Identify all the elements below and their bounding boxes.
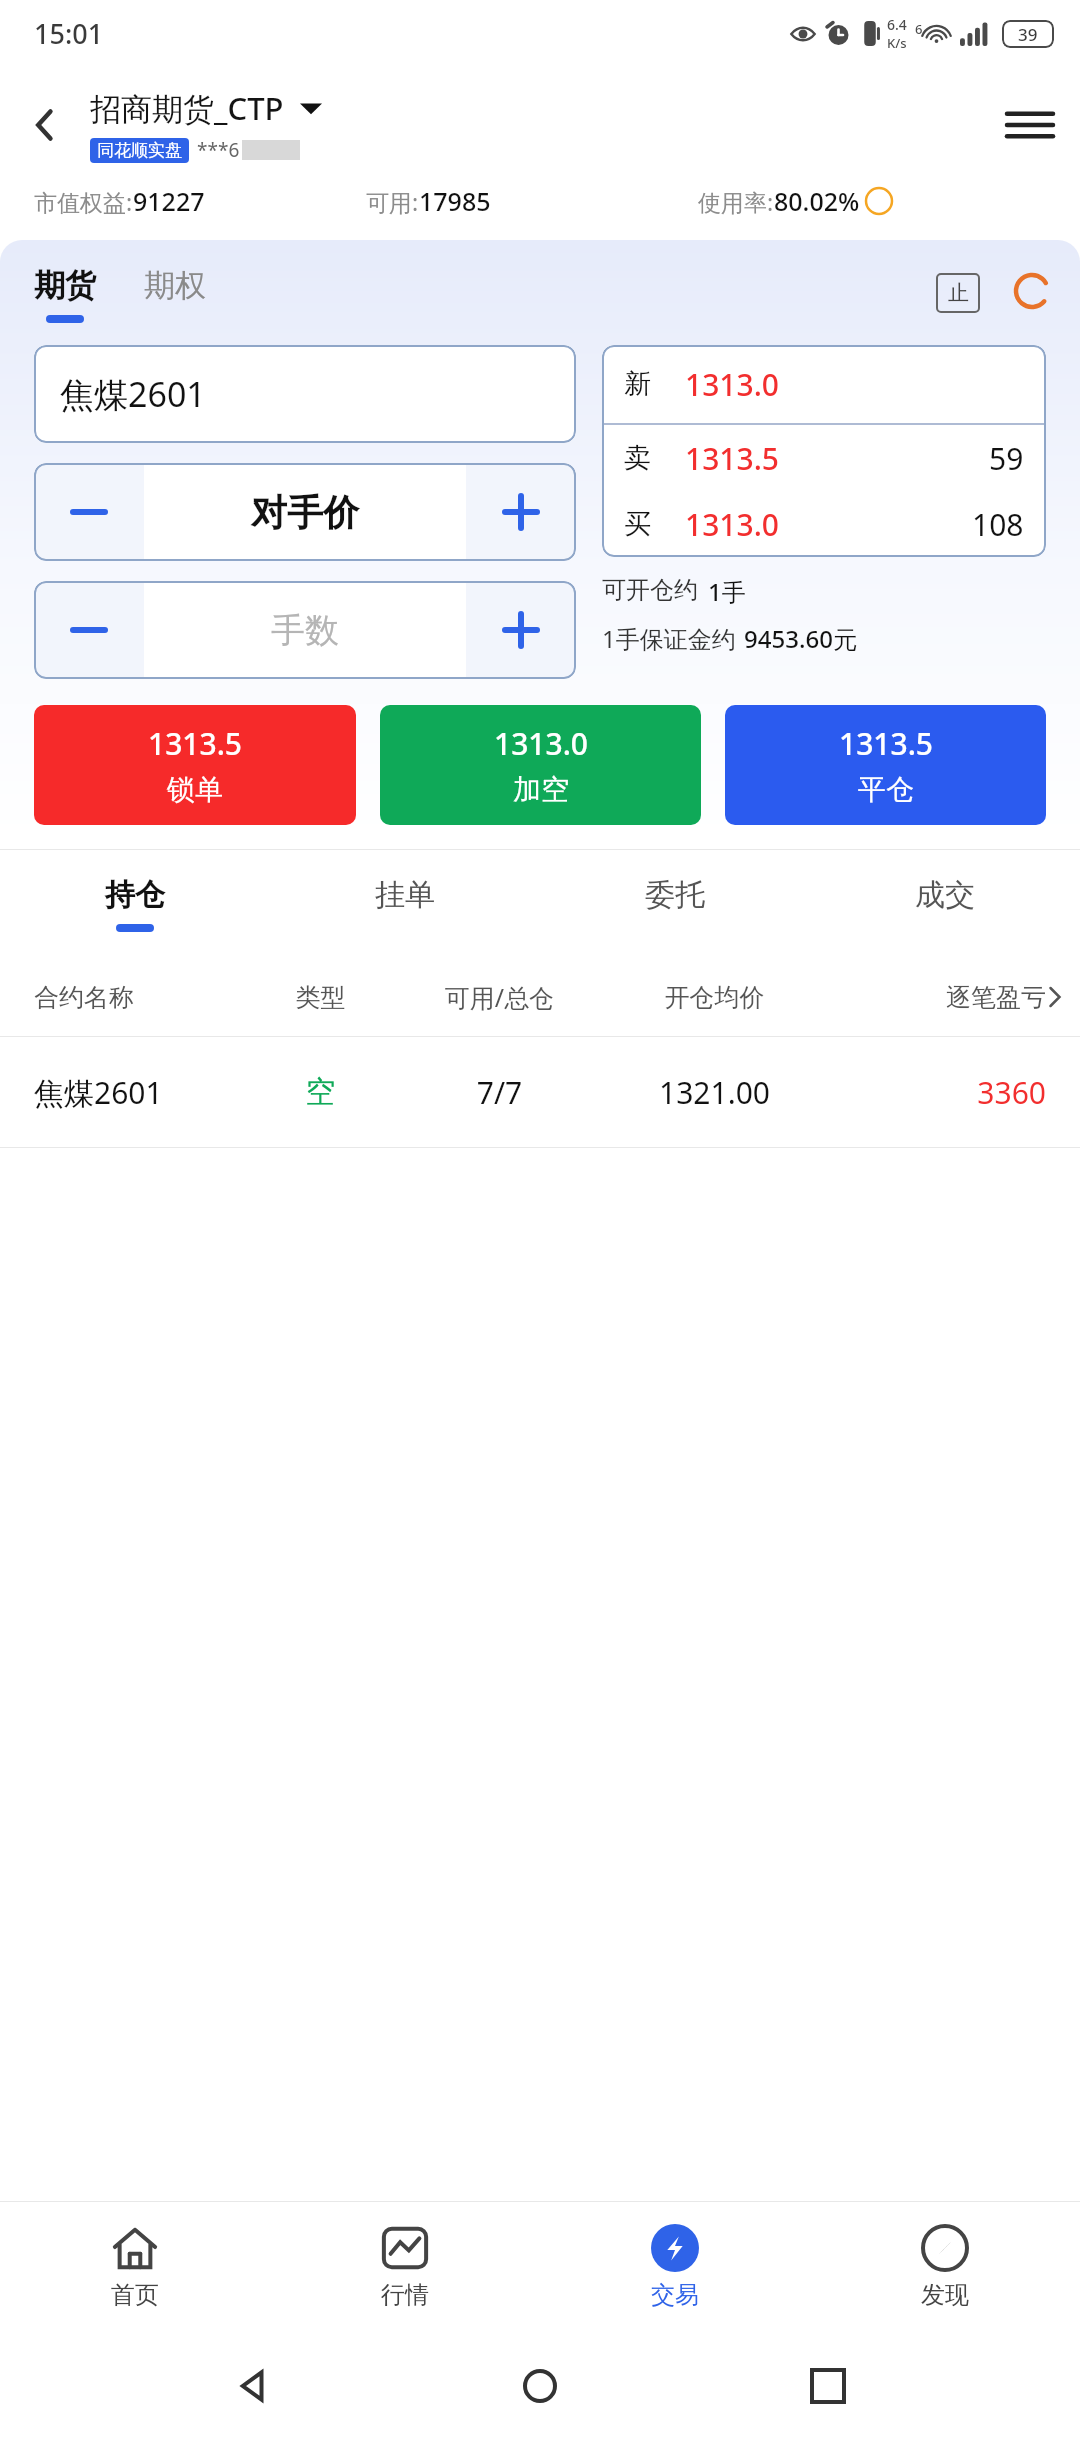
button[interactable]: 手数	[144, 581, 466, 679]
button[interactable]: Decrease 对手价	[34, 463, 144, 561]
button[interactable]: 焦煤2601	[34, 345, 576, 443]
staticText: 加空	[513, 772, 569, 807]
staticText: 15:01	[34, 15, 104, 52]
button[interactable]: 对手价	[144, 463, 466, 561]
staticText: 1313.5	[148, 723, 242, 764]
staticText: 卖	[624, 441, 651, 475]
button[interactable]: 买	[602, 491, 1046, 557]
staticText: 7/7	[392, 1072, 607, 1113]
staticText: 可用/总仓	[392, 980, 607, 1014]
button[interactable]: 委托	[540, 850, 810, 958]
staticText: 3360	[822, 1072, 1046, 1113]
staticText: 9453.60元	[744, 622, 857, 655]
other: Help	[866, 188, 892, 214]
staticText: 6	[915, 20, 923, 38]
staticText: 使用率:	[698, 186, 774, 217]
button[interactable]: 发现	[810, 2202, 1080, 2332]
button[interactable]: Order type	[936, 273, 980, 313]
button[interactable]: Home	[505, 2351, 575, 2421]
button[interactable]: 交易	[540, 2202, 810, 2332]
staticText: 焦煤2601	[60, 371, 206, 417]
staticText: 焦煤2601	[34, 1072, 249, 1113]
button[interactable]: 1313.0	[380, 705, 701, 825]
staticText: 1手	[708, 575, 746, 608]
button[interactable]: Increase 手数	[466, 581, 576, 679]
staticText: 锁单	[167, 772, 223, 807]
staticText: 市值权益:	[34, 186, 133, 217]
staticText: 17985	[419, 184, 491, 218]
button[interactable]: 焦煤2601	[0, 1037, 1080, 1147]
staticText: 首页	[111, 2280, 159, 2310]
staticText: 委托	[645, 876, 705, 914]
staticText: 持仓	[105, 876, 165, 914]
button[interactable]: 挂单	[270, 850, 540, 958]
button[interactable]: 期权	[144, 266, 206, 323]
staticText: 59	[989, 438, 1024, 479]
button[interactable]: Decrease 手数	[34, 581, 144, 679]
staticText: 交易	[651, 2280, 699, 2310]
staticText: 类型	[249, 982, 392, 1013]
staticText: 挂单	[375, 876, 435, 914]
button[interactable]: Increase 对手价	[466, 463, 576, 561]
staticText: 可开仓约	[602, 575, 698, 605]
staticText: 可用:	[366, 186, 419, 217]
staticText: K/s	[887, 34, 907, 52]
staticText: ***6	[197, 137, 240, 163]
staticText: 期权	[144, 266, 206, 305]
button[interactable]: Back	[218, 2351, 288, 2421]
staticText: 开仓均价	[607, 982, 822, 1013]
staticText: 止	[948, 280, 969, 306]
button[interactable]: 期货	[34, 266, 96, 323]
button[interactable]: Refresh	[1010, 269, 1054, 313]
staticText: 对手价	[251, 490, 359, 535]
staticText: 80.02%	[774, 184, 860, 218]
button[interactable]: 持仓	[0, 850, 270, 958]
staticText: 6.4	[887, 15, 907, 34]
button[interactable]: 卖	[602, 425, 1046, 491]
staticText: 合约名称	[34, 982, 249, 1013]
staticText: 1313.0	[685, 504, 779, 545]
button[interactable]: Recents	[793, 2351, 863, 2421]
button[interactable]: 行情	[270, 2202, 540, 2332]
staticText: 平仓	[858, 772, 914, 807]
staticText: 空	[249, 1073, 392, 1111]
staticText: 期货	[34, 266, 96, 305]
button[interactable]: 招商期货_CTP	[90, 87, 322, 129]
staticText: 108	[972, 504, 1024, 545]
button[interactable]: 1313.5	[725, 705, 1046, 825]
staticText: 发现	[921, 2280, 969, 2310]
staticText: 手数	[271, 609, 339, 652]
staticText: 1313.0	[494, 723, 588, 764]
button[interactable]: 新	[602, 345, 1046, 423]
button[interactable]: Menu	[980, 66, 1080, 184]
staticText: 1手保证金约	[602, 622, 736, 655]
staticText: 成交	[915, 876, 975, 914]
button[interactable]: Back	[0, 66, 90, 184]
button[interactable]: 首页	[0, 2202, 270, 2332]
staticText: 同花顺实盘	[97, 140, 182, 161]
staticText: 1313.5	[839, 723, 933, 764]
staticText: 91227	[133, 184, 205, 218]
staticText: 1313.5	[685, 438, 779, 479]
staticText: 新	[624, 367, 651, 401]
staticText: 买	[624, 507, 651, 541]
staticText: 39	[1018, 23, 1038, 46]
button[interactable]: 1313.5	[34, 705, 356, 825]
staticText: 行情	[381, 2280, 429, 2310]
staticText: 逐笔盈亏	[822, 982, 1046, 1013]
staticText: 1321.00	[607, 1072, 822, 1113]
staticText: 招商期货_CTP	[90, 87, 284, 129]
button[interactable]: 成交	[810, 850, 1080, 958]
staticText: 1313.0	[685, 364, 779, 405]
